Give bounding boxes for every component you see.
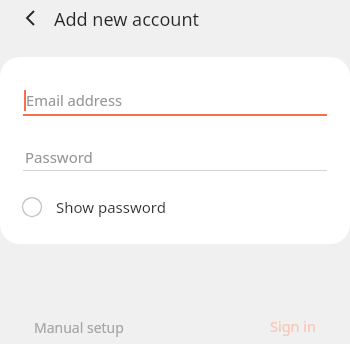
button[interactable]: Manual setup	[34, 308, 124, 344]
button[interactable]: Sign in	[270, 307, 317, 344]
staticText: Show password	[56, 197, 166, 217]
button[interactable]: Email address	[23, 88, 327, 116]
button[interactable]: Navigate up	[12, 0, 48, 36]
staticText: Manual setup	[34, 318, 124, 337]
staticText: Email address	[26, 90, 122, 110]
staticText: Add new account	[54, 7, 200, 32]
button[interactable]: Show password	[21, 194, 166, 220]
staticText: Sign in	[270, 316, 317, 336]
button[interactable]: Password	[23, 145, 327, 173]
staticText: Password	[25, 147, 93, 167]
